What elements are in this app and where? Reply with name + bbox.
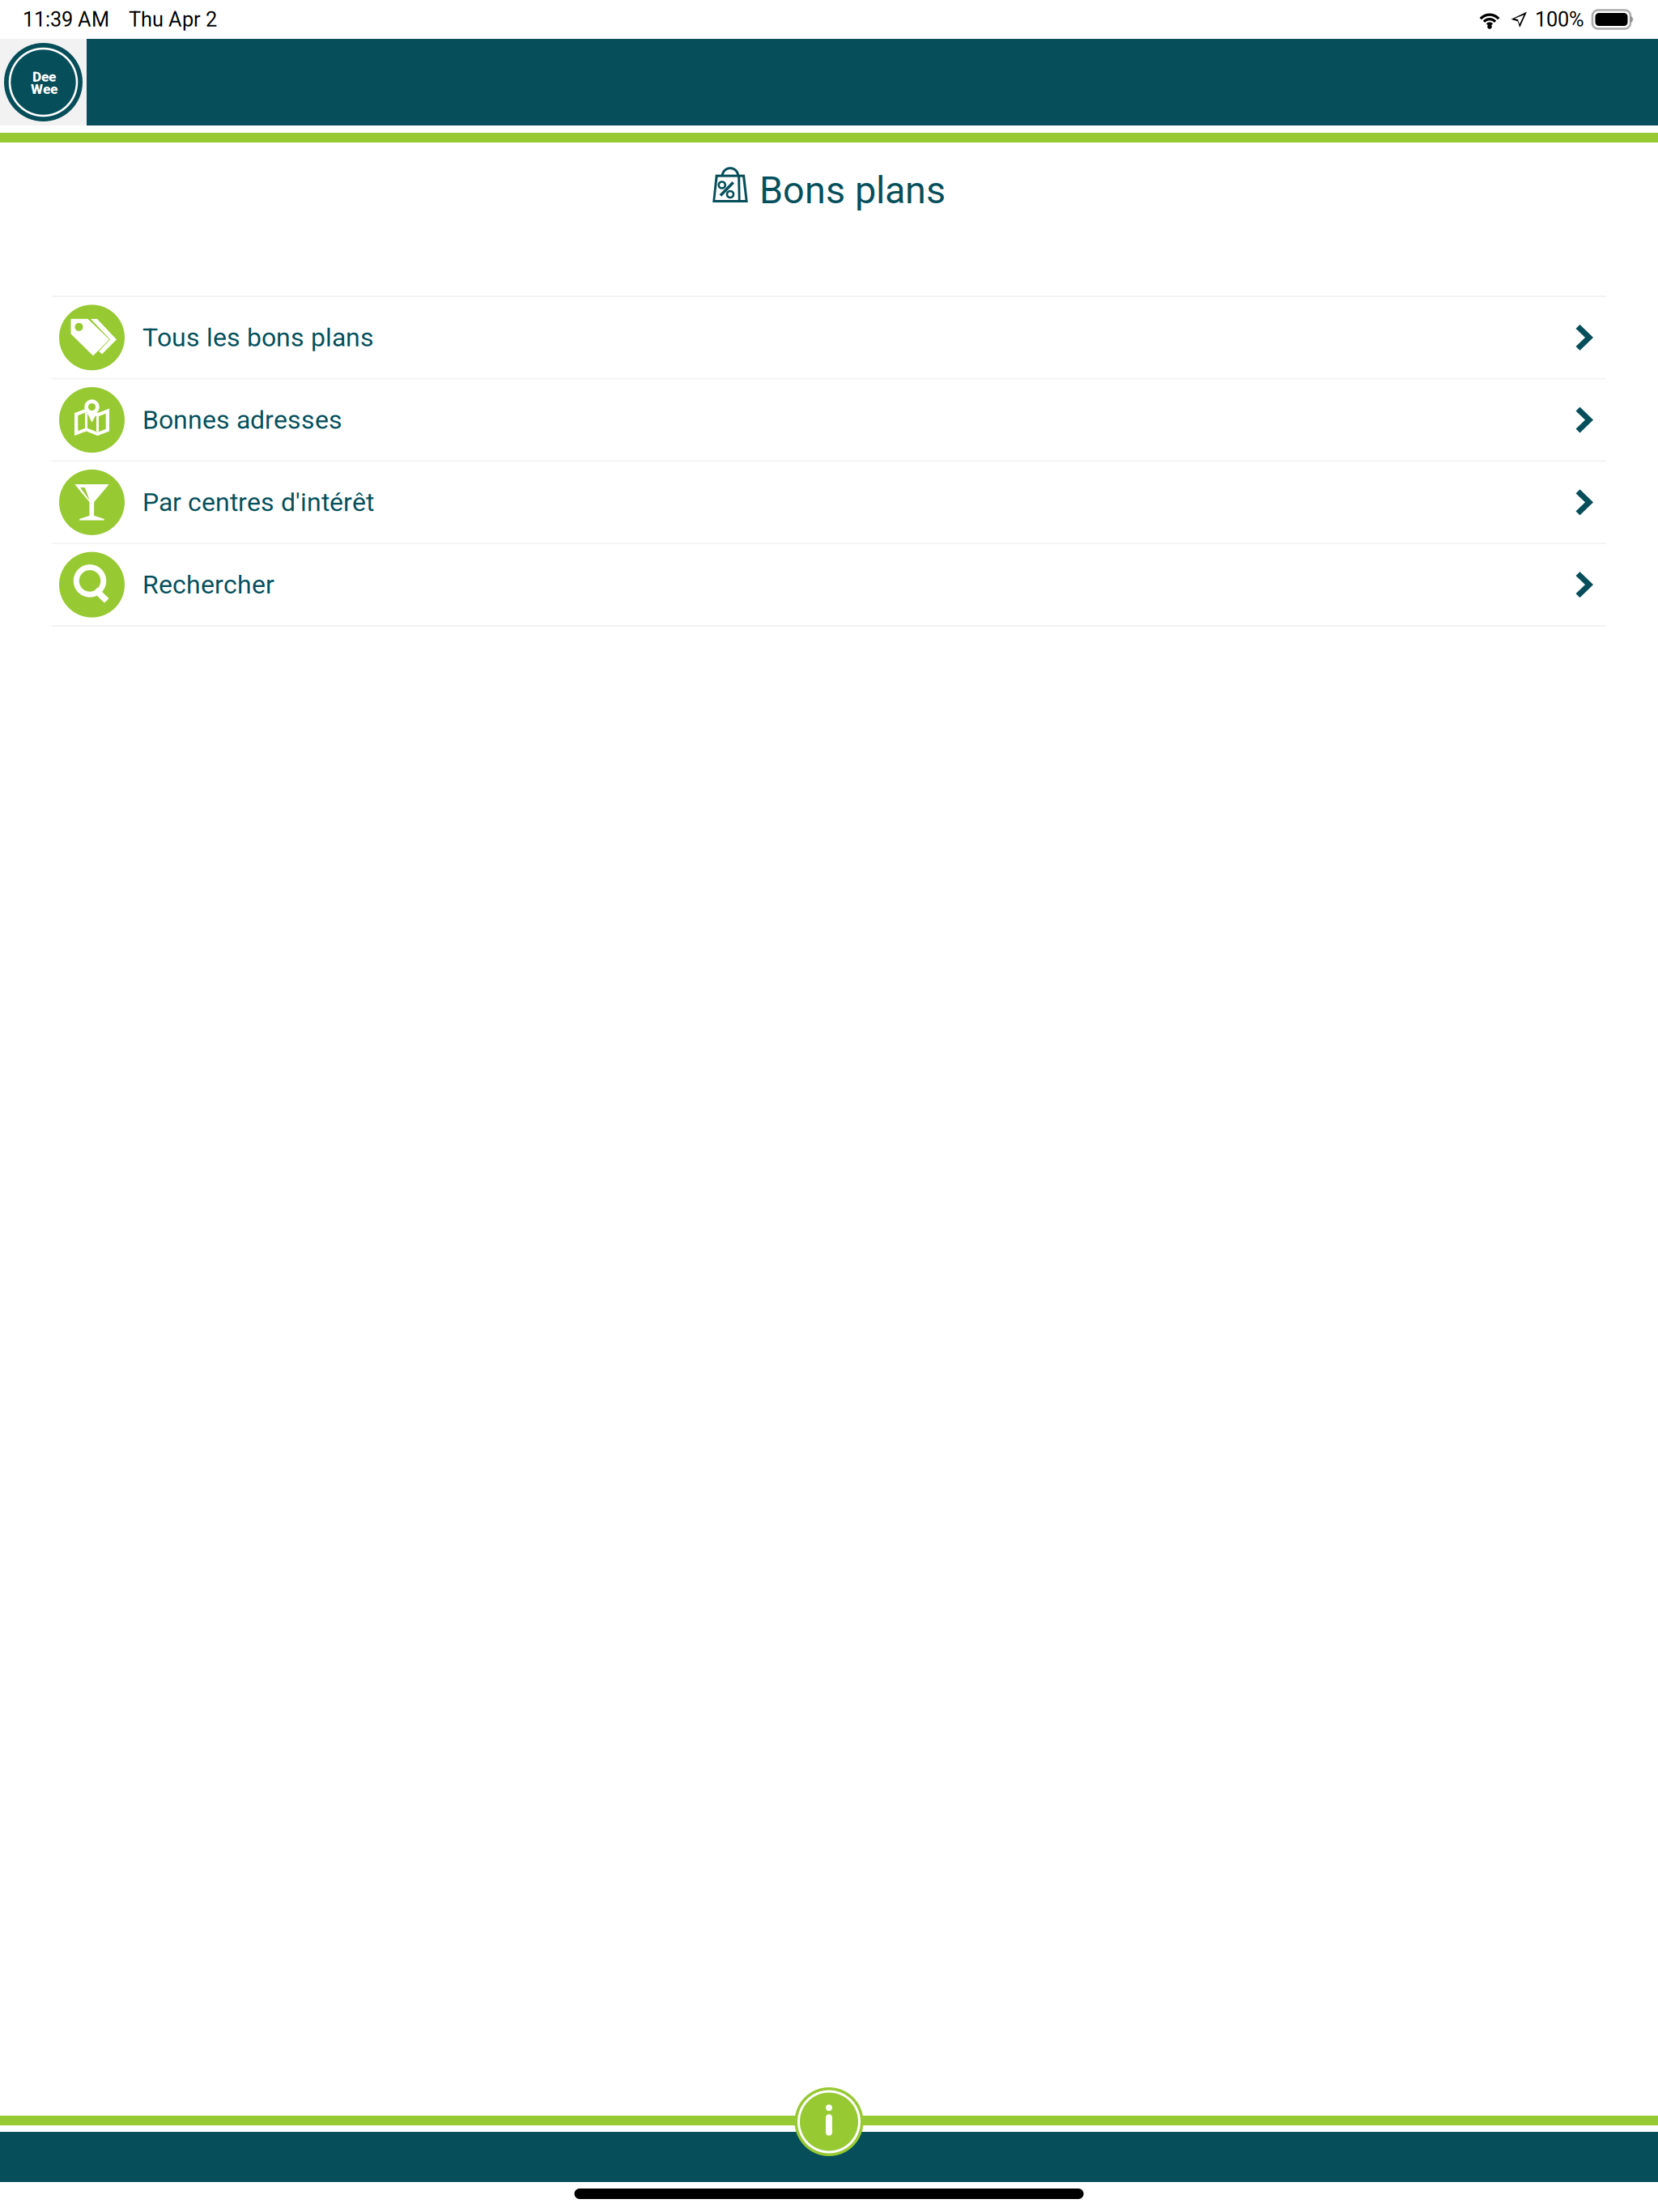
- button[interactable]: Tous les bons plans: [52, 297, 1606, 378]
- staticText: Rechercher: [142, 570, 274, 600]
- staticText: Bons plans: [759, 168, 946, 212]
- staticText: Par centres d'intérêt: [142, 487, 374, 517]
- staticText: 100%: [1535, 7, 1584, 31]
- staticText: 11:39 AM: [23, 7, 109, 31]
- button[interactable]: DeeWee home: [0, 39, 87, 125]
- staticText: Tous les bons plans: [142, 322, 374, 353]
- button[interactable]: Rechercher: [52, 544, 1606, 625]
- staticText: Dee: [32, 69, 56, 85]
- button[interactable]: Information: [795, 2088, 863, 2156]
- button[interactable]: Par centres d'intérêt: [52, 462, 1606, 543]
- staticText: Wee: [31, 81, 57, 97]
- staticText: Bonnes adresses: [142, 405, 342, 435]
- button[interactable]: Bonnes adresses: [52, 380, 1606, 460]
- staticText: Thu Apr 2: [129, 7, 217, 31]
